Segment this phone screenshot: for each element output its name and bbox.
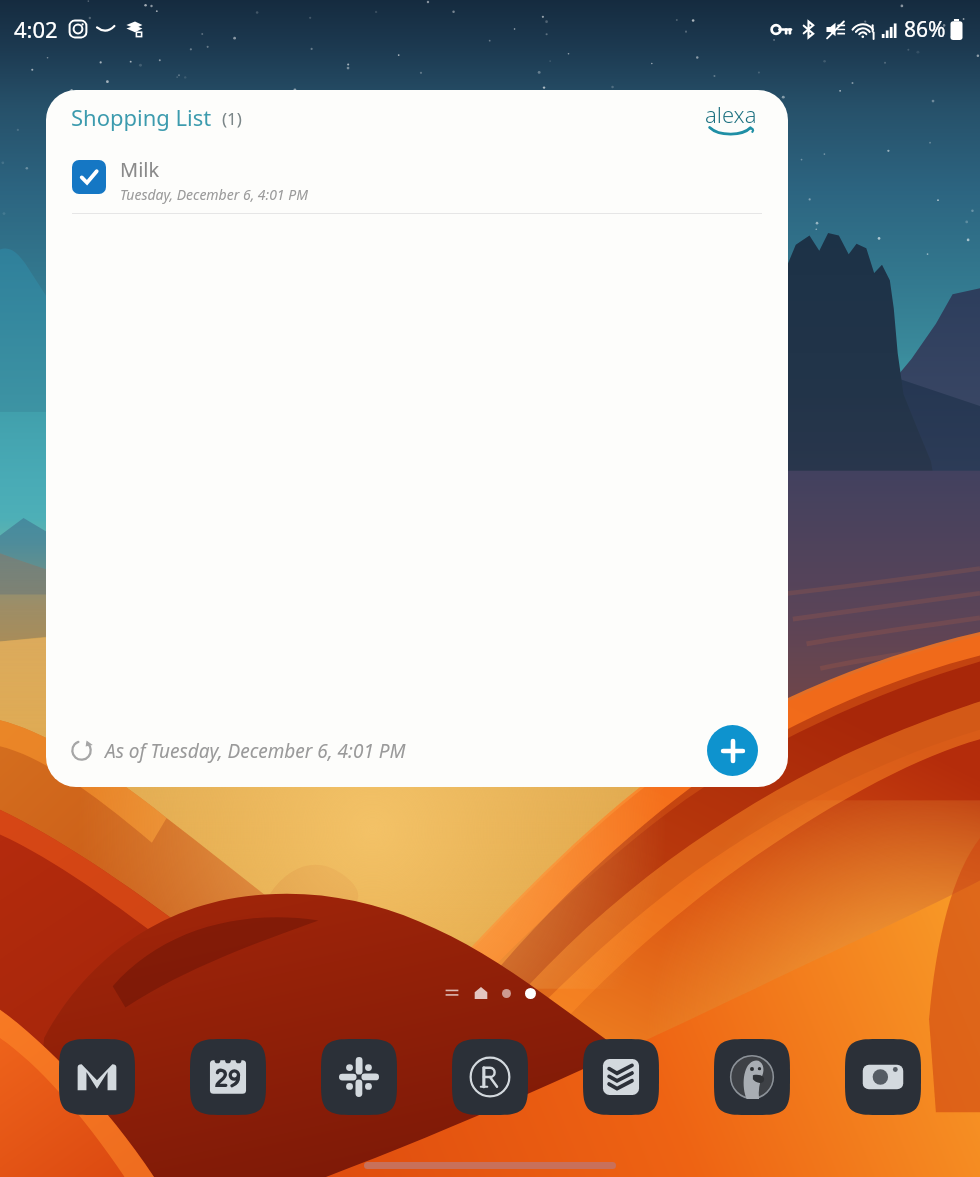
button[interactable]: Add item [707,725,758,776]
button[interactable] [502,989,511,998]
staticText: (1) [222,107,242,130]
button[interactable]: Home gesture bar [364,1162,616,1169]
button[interactable]: Milk [72,156,762,204]
button[interactable]: Home [474,986,488,1000]
button[interactable]: Readwise [452,1039,528,1115]
button[interactable]: App list [444,985,460,1001]
staticText: Tuesday, December 6, 4:01 PM [120,185,308,204]
staticText: Shopping List [71,102,212,132]
button[interactable]: Slack [321,1039,397,1115]
button[interactable]: Todoist [583,1039,659,1115]
staticText: Milk [120,156,160,183]
button[interactable] [525,988,536,999]
staticText: 86% [904,15,946,44]
button[interactable]: Gmail [59,1039,135,1115]
staticText: 4:02 [14,14,58,44]
staticText: alexa [705,99,757,129]
button[interactable]: Refresh [70,739,93,762]
button[interactable]: DuckDuckGo [714,1039,790,1115]
button[interactable]: Calendar [190,1039,266,1115]
button[interactable]: Camera [845,1039,921,1115]
staticText: As of Tuesday, December 6, 4:01 PM [105,738,406,764]
button[interactable]: Shopping List [46,90,788,787]
